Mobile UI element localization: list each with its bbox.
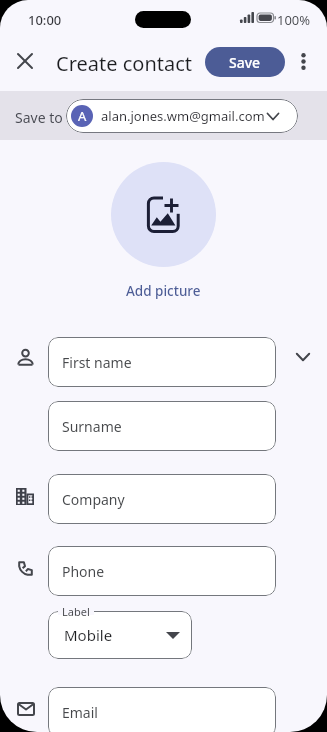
- button[interactable]: Save: [205, 47, 285, 77]
- button[interactable]: First name: [48, 337, 276, 387]
- staticText: Company: [62, 490, 125, 509]
- staticText: Save to: [15, 108, 63, 127]
- button[interactable]: [292, 50, 314, 72]
- staticText: 100%: [277, 11, 311, 29]
- button[interactable]: [111, 162, 216, 267]
- staticText: Mobile: [64, 625, 113, 645]
- staticText: Phone: [62, 562, 105, 581]
- button[interactable]: Email: [48, 687, 276, 732]
- staticText: Email: [62, 703, 98, 722]
- staticText: Save: [229, 53, 261, 72]
- staticText: Label: [62, 604, 90, 619]
- button[interactable]: Mobile: [48, 611, 192, 659]
- button[interactable]: [12, 48, 38, 74]
- button[interactable]: Add picture: [126, 282, 201, 300]
- button[interactable]: A: [66, 99, 298, 133]
- staticText: alan.jones.wm@gmail.com: [101, 107, 267, 125]
- button[interactable]: Company: [48, 474, 276, 524]
- staticText: Create contact: [56, 50, 193, 77]
- button[interactable]: Surname: [48, 401, 276, 451]
- staticText: Surname: [62, 417, 122, 436]
- button[interactable]: [292, 346, 314, 368]
- staticText: First name: [62, 353, 132, 372]
- staticText: A: [78, 107, 87, 125]
- staticText: 10:00: [28, 11, 62, 29]
- button[interactable]: Phone: [48, 546, 276, 596]
